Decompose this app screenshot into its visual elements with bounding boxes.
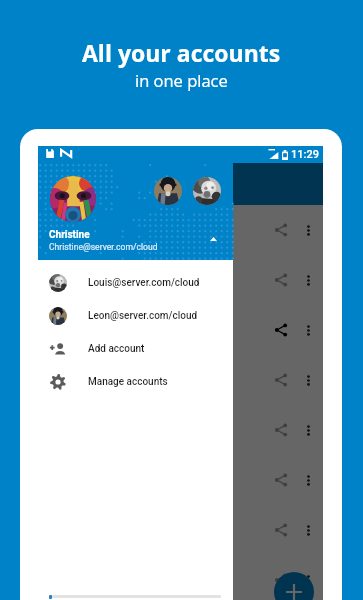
button[interactable]: Manage accounts [38,365,233,398]
button[interactable]: Add account [38,332,233,365]
staticText: Add account [88,343,145,355]
button[interactable]: Louis@server.com/cloud [38,266,233,299]
staticText: Manage accounts [88,376,168,388]
staticText: Christine@server.com/cloud [49,242,158,252]
other: Collapse account list [210,237,217,241]
staticText: Christine [49,229,90,241]
staticText: Louis@server.com/cloud [88,277,200,289]
button[interactable]: Add [274,572,314,600]
staticText: 11:29 [291,148,319,161]
staticText: Leon@server.com/cloud [88,310,198,322]
staticText: All your accounts [82,37,281,68]
staticText: in one place [135,69,228,91]
button[interactable]: Leon@server.com/cloud [38,299,233,332]
button[interactable]: Christine [38,163,233,260]
